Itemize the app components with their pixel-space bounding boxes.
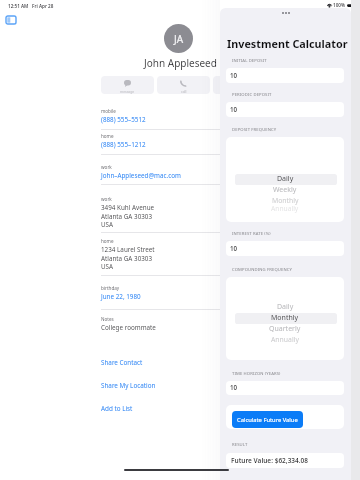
button[interactable]: Calculate Future Value: [232, 411, 303, 428]
staticText: Annually: [271, 335, 299, 344]
staticText: John Appleseed: [144, 56, 217, 70]
staticText: Fri Apr 28: [32, 3, 54, 9]
button[interactable]: work: [101, 161, 220, 185]
button[interactable]: Add to List: [101, 398, 220, 418]
button[interactable]: Share Contact: [101, 352, 220, 372]
staticText: Notes: [101, 316, 114, 322]
button[interactable]: Quarterly: [226, 323, 344, 335]
button[interactable]: Monthly: [226, 194, 344, 206]
staticText: birthday: [101, 285, 120, 291]
staticText: Calculate Future Value: [237, 416, 298, 424]
button[interactable]: Notes: [101, 313, 220, 336]
staticText: message: [120, 89, 135, 94]
staticText: Quarterly: [269, 324, 301, 334]
button[interactable]: Monthly: [226, 312, 344, 324]
button[interactable]: home: [101, 235, 220, 276]
staticText: Daily: [277, 174, 294, 184]
button[interactable]: Daily: [226, 173, 344, 185]
staticText: COMPOUNDING FREQUENCY: [232, 267, 292, 273]
staticText: JA: [174, 32, 184, 46]
staticText: TIME HORIZON (YEARS): [232, 371, 281, 377]
staticText: work: [101, 164, 112, 170]
button[interactable]: 10: [226, 241, 344, 256]
staticText: home: [101, 238, 114, 244]
staticText: Weekly: [273, 185, 297, 195]
button[interactable]: mobile: [101, 105, 220, 130]
button[interactable]: call: [157, 76, 210, 94]
staticText: home: [101, 133, 114, 139]
staticText: call: [181, 89, 187, 94]
button[interactable]: home: [101, 130, 220, 155]
staticText: PERIODIC DEPOSIT: [232, 92, 272, 98]
button[interactable]: Share My Location: [101, 375, 220, 395]
staticText: 10: [230, 244, 238, 252]
staticText: Add to List: [101, 404, 133, 413]
staticText: June 22, 1980: [101, 292, 141, 301]
button[interactable]: Weekly: [226, 184, 344, 196]
staticText: (888) 555–1212: [101, 140, 146, 149]
button[interactable]: 10: [226, 68, 344, 83]
staticText: Share Contact: [101, 358, 143, 367]
staticText: Future Value: $62,334.08: [231, 456, 309, 465]
staticText: Investment Calculator: [227, 36, 348, 51]
staticText: College roommate: [101, 323, 156, 332]
staticText: Monthly: [272, 196, 299, 205]
staticText: 1234 Laurel Street Atlanta GA 30303 USA: [101, 245, 155, 270]
staticText: Annually: [271, 204, 299, 213]
button[interactable]: birthday: [101, 282, 220, 310]
button[interactable]: Toggle sidebar: [4, 13, 18, 27]
staticText: 10: [230, 105, 238, 113]
button[interactable]: Annually: [226, 333, 344, 345]
button[interactable]: 10: [226, 381, 344, 395]
button[interactable]: Daily: [226, 301, 344, 313]
staticText: INTEREST RATE (%): [232, 231, 271, 237]
button[interactable]: Annually: [226, 202, 344, 214]
button[interactable]: work: [101, 193, 220, 233]
staticText: 10: [230, 71, 238, 79]
staticText: work: [101, 196, 112, 202]
button[interactable]: message: [101, 76, 154, 94]
button[interactable]: video: [213, 76, 266, 94]
staticText: 100%: [333, 2, 345, 8]
staticText: 12:51 AM: [8, 3, 29, 9]
staticText: Share My Location: [101, 381, 156, 390]
staticText: mobile: [101, 108, 116, 114]
staticText: 10: [230, 383, 238, 391]
staticText: Daily: [277, 302, 294, 312]
staticText: John–Appleseed@mac.com: [101, 171, 181, 180]
button[interactable]: 10: [226, 102, 344, 117]
staticText: Monthly: [271, 313, 299, 323]
staticText: video: [235, 89, 244, 94]
staticText: INITIAL DEPOSIT: [232, 58, 267, 64]
staticText: 3494 Kuhl Avenue Atlanta GA 30303 USA: [101, 203, 155, 228]
staticText: RESULT: [232, 442, 248, 448]
staticText: DEPOSIT FREQUENCY: [232, 127, 277, 133]
staticText: (888) 555–5512: [101, 115, 146, 124]
